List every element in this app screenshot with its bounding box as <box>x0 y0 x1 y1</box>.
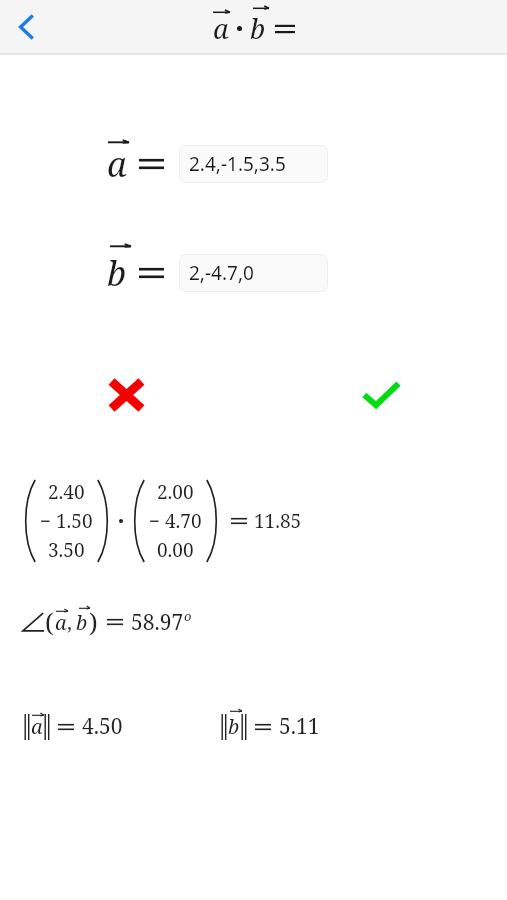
staticText: a <box>107 141 127 187</box>
staticText: 0.00 <box>157 537 194 563</box>
button[interactable]: Clear <box>98 373 154 417</box>
staticText: b <box>107 250 127 296</box>
staticText: 4.50 <box>82 712 123 741</box>
staticText: o <box>184 607 192 625</box>
staticText: 2.40 <box>48 479 85 505</box>
button[interactable]: Calculate <box>353 373 409 417</box>
staticText: ) <box>89 605 98 639</box>
staticText: , <box>67 609 72 636</box>
staticText: a <box>55 609 67 636</box>
staticText: b <box>228 713 240 740</box>
button[interactable]: 2.4,-1.5,3.5 <box>179 145 328 183</box>
staticText: 2.00 <box>157 479 194 505</box>
staticText: b <box>250 10 266 47</box>
staticText: ( <box>45 605 54 639</box>
button[interactable]: 2,-4.7,0 <box>179 254 328 292</box>
staticText: − 1.50 <box>40 508 93 534</box>
staticText: − 4.70 <box>149 508 202 534</box>
staticText: 2.4,-1.5,3.5 <box>189 151 286 177</box>
staticText: a <box>213 10 229 47</box>
staticText: 11.85 <box>254 508 302 534</box>
staticText: 5.11 <box>279 712 320 741</box>
button[interactable]: Back <box>4 4 50 50</box>
staticText: 2,-4.7,0 <box>189 260 254 286</box>
staticText: 58.97 <box>131 608 184 637</box>
staticText: 3.50 <box>48 537 85 563</box>
staticText: b <box>76 609 88 636</box>
staticText: a <box>31 713 43 740</box>
